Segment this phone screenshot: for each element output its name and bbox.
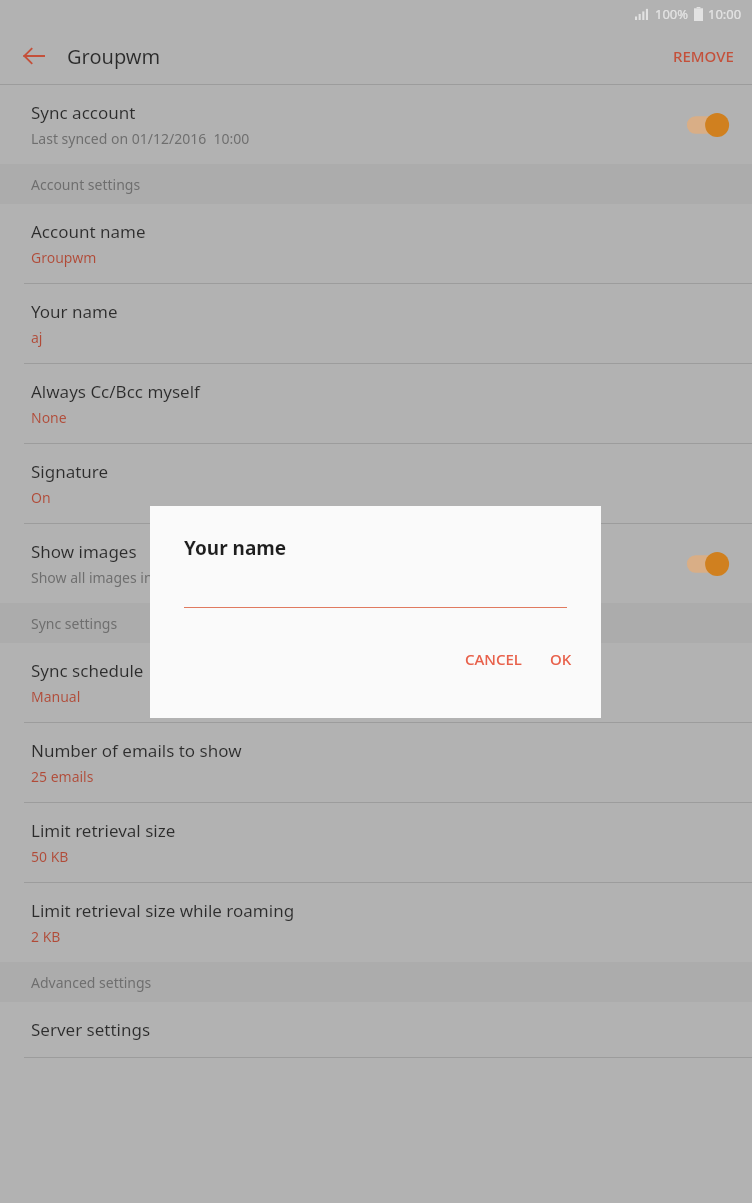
button[interactable]: Limit retrieval size while roaming — [0, 883, 752, 962]
staticText: Last synced on 01/12/2016 10:00 — [31, 129, 250, 148]
staticText: Limit retrieval size — [31, 819, 176, 842]
button[interactable]: Signature — [0, 444, 752, 523]
button[interactable]: Sync account — [0, 85, 752, 164]
staticText: Limit retrieval size while roaming — [31, 899, 295, 922]
button[interactable]: REMOVE — [663, 38, 744, 74]
staticText: 25 emails — [31, 767, 94, 786]
staticText: Groupwm — [31, 248, 97, 267]
button[interactable]: Number of emails to show — [0, 723, 752, 802]
button[interactable]: Always Cc/Bcc myself — [0, 364, 752, 443]
button[interactable]: OK — [541, 641, 581, 677]
staticText: REMOVE — [673, 46, 734, 66]
staticText: Manual — [31, 687, 81, 706]
button[interactable]: Your name — [0, 284, 752, 363]
button[interactable]: Toggle — [684, 549, 732, 579]
button[interactable]: Sync schedule — [0, 643, 752, 722]
staticText: OK — [550, 649, 572, 669]
staticText: Sync settings — [31, 614, 118, 633]
button[interactable]: Server settings — [0, 1002, 752, 1057]
button[interactable]: Back — [10, 32, 58, 80]
staticText: aj — [31, 328, 43, 347]
staticText: Server settings — [31, 1018, 151, 1041]
button[interactable]: Account name — [0, 204, 752, 283]
staticText: Signature — [31, 460, 109, 483]
staticText: Sync account — [31, 101, 136, 124]
staticText: 100% — [655, 5, 689, 23]
button[interactable]: Toggle — [684, 110, 732, 140]
staticText: On — [31, 488, 51, 507]
staticText: Show all images in emails — [31, 568, 199, 587]
staticText: Account name — [31, 220, 146, 243]
staticText: Always Cc/Bcc myself — [31, 380, 200, 403]
staticText: Account settings — [31, 175, 141, 194]
staticText: Number of emails to show — [31, 739, 242, 762]
button[interactable]: Show images — [0, 524, 752, 603]
staticText: Sync schedule — [31, 659, 144, 682]
staticText: Your name — [31, 300, 118, 323]
staticText: Groupwm — [67, 43, 161, 70]
staticText: Advanced settings — [31, 973, 152, 992]
staticText: 10:00 — [708, 5, 742, 23]
button[interactable]: Limit retrieval size — [0, 803, 752, 882]
staticText: Show images — [31, 540, 137, 563]
staticText: CANCEL — [465, 649, 522, 669]
button[interactable]: CANCEL — [456, 641, 531, 677]
staticText: None — [31, 408, 67, 427]
staticText: Your name — [184, 535, 287, 561]
staticText: 2 KB — [31, 927, 61, 946]
staticText: 50 KB — [31, 847, 69, 866]
